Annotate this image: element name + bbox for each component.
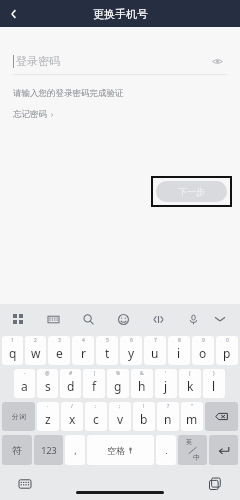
staticText: ) — [213, 370, 215, 377]
button[interactable]: 0 — [216, 336, 238, 365]
staticText: 5 — [106, 337, 109, 344]
staticText: 9 — [202, 337, 205, 344]
staticText: 1 — [11, 337, 14, 344]
staticText: | — [93, 370, 96, 377]
staticText: t — [105, 345, 110, 361]
staticText: % — [116, 370, 121, 377]
staticText: 4 — [82, 337, 85, 344]
staticText: j — [164, 378, 168, 394]
staticText: 中 — [193, 453, 200, 462]
button[interactable]: | — [83, 369, 105, 398]
button[interactable]: ; — [109, 402, 131, 431]
staticText: q — [9, 345, 17, 361]
staticText: 英 — [186, 438, 192, 446]
staticText: k — [187, 378, 194, 394]
staticText: / — [71, 403, 73, 410]
button[interactable]: 2 — [25, 336, 46, 365]
button[interactable]: ? — [157, 402, 179, 431]
button[interactable]: 英 — [178, 435, 207, 465]
staticText: @ — [45, 370, 50, 377]
staticText: m — [186, 411, 198, 427]
staticText: 请输入您的登录密码完成验证 — [13, 88, 124, 99]
button[interactable]: - — [14, 369, 35, 398]
button[interactable]: Clipboard — [149, 310, 167, 328]
button[interactable]: Recent apps — [207, 476, 223, 492]
button[interactable]: Back — [0, 0, 28, 27]
button[interactable]: @ — [37, 369, 58, 398]
button[interactable]: 下一步 — [156, 181, 227, 202]
staticText: - — [24, 370, 26, 377]
staticText: 6 — [130, 337, 133, 344]
button[interactable]: 3 — [48, 336, 70, 365]
button[interactable]: 空格 — [87, 435, 154, 465]
button[interactable]: Voice input — [184, 310, 202, 328]
staticText: # — [69, 370, 73, 377]
staticText: 2 — [34, 337, 37, 344]
staticText: n — [164, 411, 172, 427]
button[interactable]: Hide keyboard — [211, 310, 229, 328]
button[interactable]: Apps — [9, 310, 27, 328]
staticText: " — [191, 403, 194, 410]
staticText: c — [93, 411, 99, 427]
button[interactable]: Switch keyboard — [17, 476, 33, 492]
button[interactable]: " — [181, 402, 203, 431]
button[interactable]: ) — [203, 369, 225, 398]
button[interactable]: : — [85, 402, 107, 431]
button[interactable]: ' — [155, 369, 177, 398]
button[interactable]: Show password — [207, 51, 227, 71]
button[interactable]: 8 — [168, 336, 190, 365]
button[interactable]: & — [131, 369, 153, 398]
staticText: p — [223, 345, 231, 361]
button[interactable]: ( — [179, 369, 201, 398]
staticText: d — [67, 378, 75, 394]
button[interactable]: ! — [133, 402, 155, 431]
button[interactable]: 忘记密码 — [13, 109, 55, 120]
staticText: 7 — [154, 337, 157, 344]
staticText: ? — [167, 403, 170, 410]
staticText: w — [31, 345, 41, 361]
staticText: 下一步 — [178, 186, 205, 197]
staticText: x — [69, 411, 76, 427]
button[interactable]: · — [37, 402, 59, 431]
staticText: : — [95, 403, 97, 410]
button[interactable]: Search — [79, 310, 97, 328]
button[interactable]: 6 — [120, 336, 142, 365]
staticText: 更换手机号 — [93, 7, 148, 21]
button[interactable]: Backspace — [205, 402, 238, 431]
button[interactable]: 分词 — [2, 402, 35, 431]
staticText: 3 — [58, 337, 61, 344]
button[interactable]: / — [61, 402, 83, 431]
staticText: 0 — [226, 337, 229, 344]
button[interactable]: Home — [76, 491, 164, 494]
button[interactable]: 7 — [144, 336, 166, 365]
button[interactable]: Enter — [209, 435, 238, 465]
staticText: s — [45, 378, 51, 394]
button[interactable]: 4 — [72, 336, 94, 365]
button[interactable]: % — [107, 369, 129, 398]
button[interactable]: Emoji — [114, 310, 132, 328]
button[interactable]: # — [60, 369, 81, 398]
button[interactable]: 123 — [34, 435, 63, 465]
staticText: g — [114, 378, 122, 394]
staticText: y — [128, 345, 135, 361]
button[interactable]: 符 — [2, 435, 32, 465]
button[interactable]: , — [65, 435, 85, 465]
button[interactable]: 5 — [96, 336, 118, 365]
staticText: l — [212, 378, 216, 394]
staticText: . — [165, 444, 168, 456]
staticText: 分词 — [12, 412, 26, 421]
staticText: , — [74, 444, 77, 456]
button[interactable]: 9 — [192, 336, 214, 365]
staticText: 123 — [41, 444, 57, 456]
staticText: z — [45, 411, 51, 427]
staticText: i — [177, 345, 181, 361]
staticText: f — [92, 378, 97, 394]
staticText: u — [151, 345, 159, 361]
button[interactable]: . — [156, 435, 176, 465]
button[interactable]: Keyboard layout — [44, 310, 62, 328]
staticText: h — [138, 378, 146, 394]
staticText: r — [81, 345, 86, 361]
staticText: a — [21, 378, 28, 394]
button[interactable]: 1 — [2, 336, 23, 365]
staticText: & — [140, 370, 144, 377]
